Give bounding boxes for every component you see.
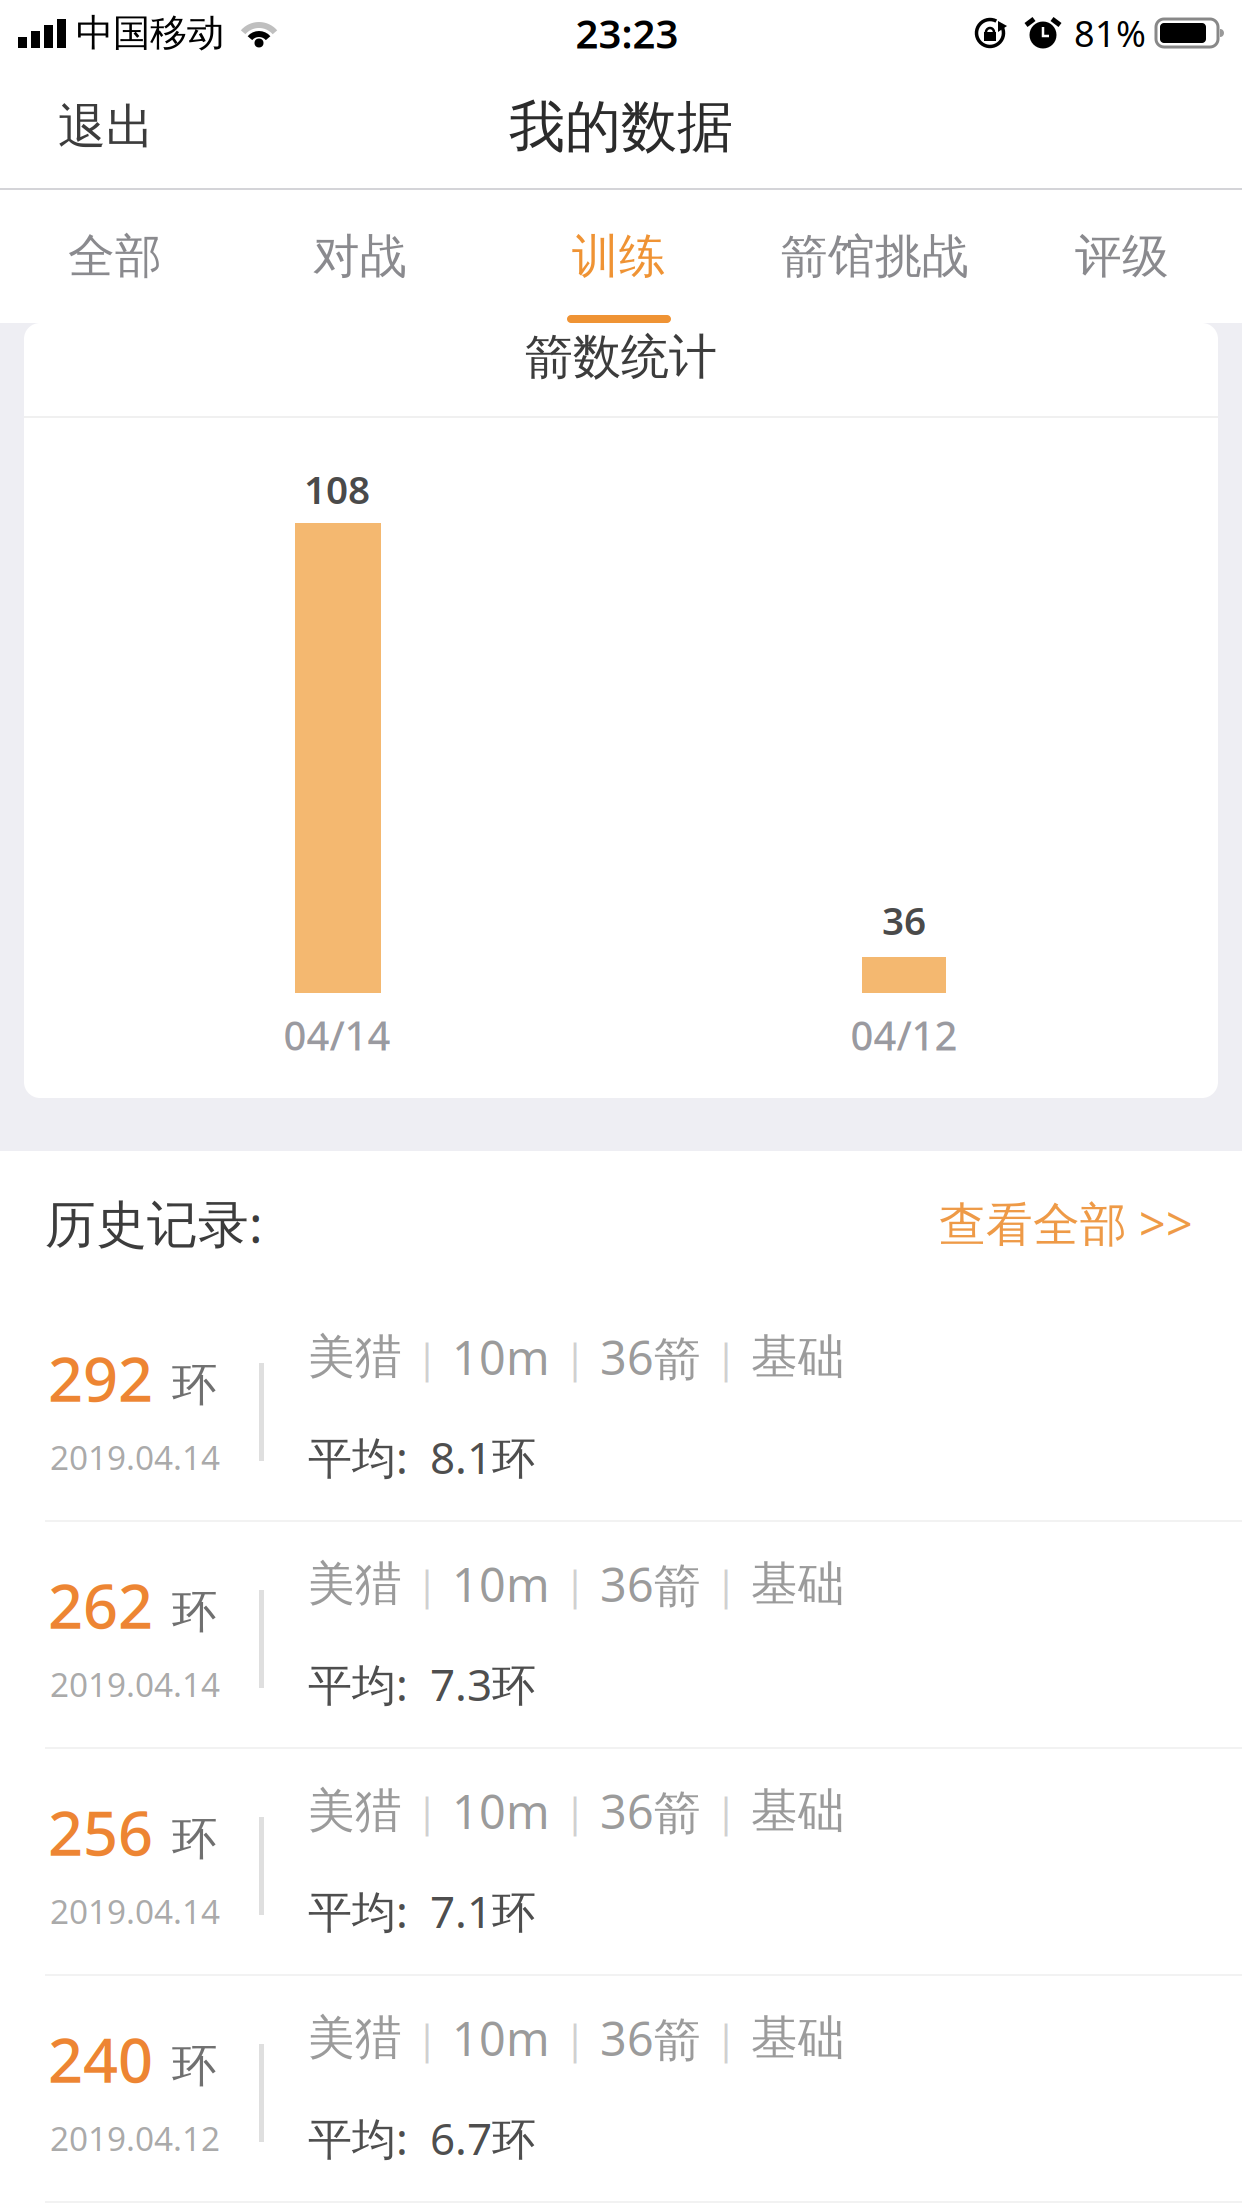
staticText: 10m [452, 2007, 550, 2069]
staticText: 292 [48, 1337, 153, 1419]
button[interactable]: 292 [0, 1295, 1242, 1522]
staticText: 240 [48, 2018, 153, 2100]
staticText: 36 [882, 894, 926, 946]
staticText: 环 [172, 1811, 217, 1867]
staticText: 箭馆挑战 [781, 228, 969, 285]
staticText: 我的数据 [509, 93, 733, 161]
staticText: | [564, 2011, 586, 2064]
staticText: 美猎 [308, 2009, 402, 2067]
staticText: | [715, 1557, 737, 1610]
staticText: 基础 [751, 1328, 845, 1386]
button[interactable]: 全部 [0, 190, 230, 323]
button[interactable]: 训练 [490, 190, 748, 323]
staticText: | [564, 1557, 586, 1610]
staticText: 108 [304, 463, 370, 515]
staticText: 环 [172, 2038, 217, 2094]
staticText: 查看全部 >> [939, 1192, 1193, 1254]
button[interactable]: 对战 [230, 190, 490, 323]
staticText: 美猎 [308, 1782, 402, 1840]
staticText: 2019.04.14 [50, 1435, 220, 1479]
staticText: 美猎 [308, 1555, 402, 1613]
button[interactable]: 退出 [0, 97, 154, 156]
staticText: | [416, 1557, 438, 1610]
staticText: 平均: 7.3环 [308, 1655, 536, 1713]
staticText: 基础 [751, 2009, 845, 2067]
staticText: | [416, 1330, 438, 1383]
staticText: 36箭 [600, 1780, 701, 1842]
button[interactable]: 240 [0, 1976, 1242, 2203]
staticText: | [416, 1784, 438, 1837]
staticText: 环 [172, 1357, 217, 1413]
staticText: 36箭 [600, 1553, 701, 1615]
staticText: 81% [1074, 9, 1146, 57]
button[interactable]: 262 [0, 1522, 1242, 1749]
staticText: | [564, 1784, 586, 1837]
staticText: | [715, 2011, 737, 2064]
staticText: 基础 [751, 1555, 845, 1613]
staticText: 对战 [313, 228, 407, 285]
staticText: 评级 [1075, 228, 1169, 285]
staticText: 平均: 8.1环 [308, 1428, 536, 1486]
staticText: 箭数统计 [525, 327, 717, 386]
button[interactable]: 箭馆挑战 [748, 190, 1002, 323]
staticText: 平均: 7.1环 [308, 1882, 536, 1940]
staticText: | [715, 1784, 737, 1837]
staticText: 256 [48, 1791, 153, 1873]
button[interactable]: 评级 [1002, 190, 1242, 323]
staticText: | [564, 1330, 586, 1383]
staticText: 全部 [68, 228, 162, 285]
button[interactable]: 256 [0, 1749, 1242, 1976]
staticText: 04/14 [283, 1008, 390, 1061]
staticText: 36箭 [600, 1326, 701, 1388]
button[interactable]: 查看全部 >> [939, 1192, 1242, 1254]
staticText: 262 [48, 1564, 153, 1646]
staticText: 2019.04.14 [50, 1889, 220, 1933]
staticText: 10m [452, 1553, 550, 1615]
staticText: | [416, 2011, 438, 2064]
staticText: 10m [452, 1780, 550, 1842]
staticText: 2019.04.14 [50, 1662, 220, 1706]
staticText: | [715, 1330, 737, 1383]
staticText: 历史记录: [45, 1189, 263, 1257]
staticText: 训练 [572, 228, 666, 285]
staticText: 退出 [58, 97, 154, 156]
staticText: 美猎 [308, 1328, 402, 1386]
staticText: 10m [452, 1326, 550, 1388]
staticText: 2019.04.12 [50, 2116, 220, 2160]
staticText: 04/12 [850, 1008, 957, 1061]
staticText: 36箭 [600, 2007, 701, 2069]
staticText: 中国移动 [76, 10, 224, 56]
staticText: 基础 [751, 1782, 845, 1840]
staticText: 平均: 6.7环 [308, 2109, 536, 2167]
staticText: 环 [172, 1584, 217, 1640]
staticText: 23:23 [575, 6, 678, 59]
